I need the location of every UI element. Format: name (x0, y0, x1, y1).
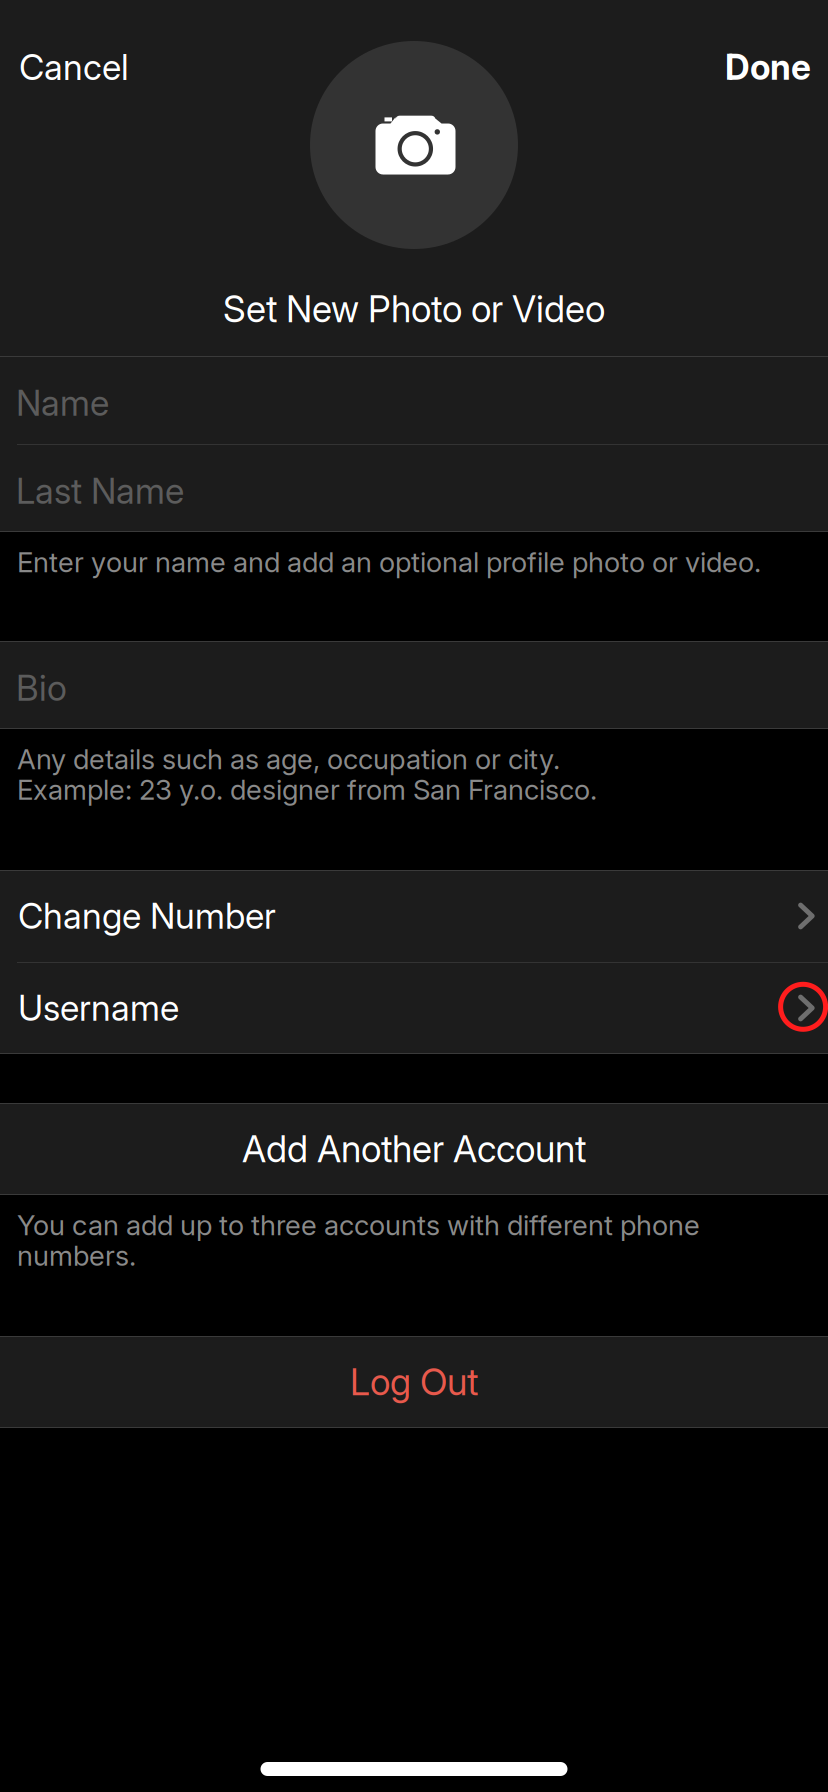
button[interactable]: Username (0, 962, 828, 1054)
staticText: Last Name (16, 470, 184, 512)
button[interactable]: Done (709, 34, 828, 100)
staticText: Done (725, 46, 811, 88)
staticText: Set New Photo or Video (223, 287, 605, 331)
staticText: Cancel (19, 46, 129, 88)
button[interactable]: Add Another Account (0, 1103, 828, 1195)
staticText: Change Number (18, 895, 276, 937)
button[interactable]: Cancel (0, 34, 145, 100)
staticText: Bio (16, 667, 67, 709)
staticText: Example: 23 y.o. designer from San Franc… (17, 773, 597, 806)
button[interactable] (310, 41, 518, 249)
staticText: Name (16, 382, 109, 424)
staticText: numbers. (17, 1239, 136, 1272)
button[interactable]: Log Out (0, 1336, 828, 1428)
staticText: Any details such as age, occupation or c… (17, 742, 560, 776)
staticText: Add Another Account (242, 1127, 586, 1171)
button[interactable]: Change Number (0, 870, 828, 962)
button[interactable]: Set New Photo or Video (203, 249, 625, 341)
staticText: You can add up to three accounts with di… (17, 1208, 700, 1242)
staticText: Enter your name and add an optional prof… (17, 545, 761, 579)
staticText: Log Out (350, 1360, 478, 1404)
staticText: Username (18, 987, 179, 1029)
